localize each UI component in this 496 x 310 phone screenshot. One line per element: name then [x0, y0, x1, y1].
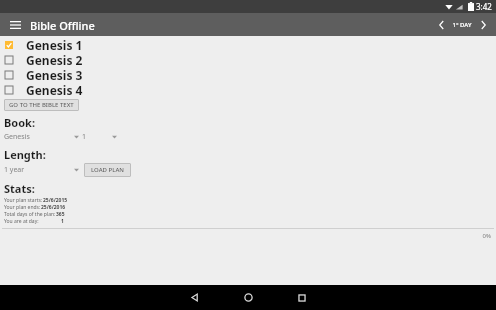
button[interactable]: Select chapter — [82, 131, 120, 143]
staticText: Genesis 2 — [26, 52, 83, 67]
staticText: 365 — [56, 211, 65, 218]
staticText: You are at day: — [4, 218, 39, 225]
staticText: 0% — [0, 232, 491, 240]
button[interactable]: Genesis 3 — [0, 67, 496, 82]
staticText: 25/6/2016 — [41, 204, 66, 211]
button[interactable]: Select plan length — [4, 164, 82, 176]
button[interactable]: Genesis 4 — [0, 82, 496, 97]
staticText: LOAD PLAN — [91, 166, 124, 174]
staticText: Genesis 3 — [26, 67, 83, 82]
staticText: 25/6/2015 — [43, 197, 68, 204]
staticText: Genesis — [4, 132, 74, 142]
button[interactable]: GO TO THE BIBLE TEXT — [4, 99, 79, 111]
button[interactable]: Previous day — [433, 15, 449, 35]
staticText: Your plan starts: — [4, 197, 43, 204]
staticText: 1 year — [4, 165, 74, 175]
staticText: Total days of the plan: — [4, 211, 56, 218]
staticText: 1 — [82, 132, 112, 142]
staticText: GO TO THE BIBLE TEXT — [9, 101, 74, 109]
staticText: Stats: — [4, 181, 35, 196]
button[interactable]: LOAD PLAN — [84, 163, 131, 177]
staticText: Your plan ends: — [4, 204, 41, 211]
staticText: Book: — [4, 115, 35, 130]
button[interactable]: Back — [178, 285, 210, 310]
button[interactable]: Next day — [475, 15, 491, 35]
staticText: Genesis 1 — [26, 37, 83, 52]
button[interactable]: Select book — [4, 131, 82, 143]
staticText: 3:42 — [476, 1, 492, 12]
staticText: 1° DAY — [449, 21, 475, 29]
button[interactable]: Genesis 2 — [0, 52, 496, 67]
staticText: Bible Offline — [30, 18, 95, 33]
button[interactable]: Recent apps — [286, 285, 318, 310]
button[interactable]: Open navigation drawer — [6, 16, 24, 34]
staticText: 1 — [61, 218, 64, 225]
button[interactable]: Home — [232, 285, 264, 310]
staticText: Genesis 4 — [26, 82, 83, 97]
staticText: Length: — [4, 147, 46, 162]
button[interactable]: Genesis 1 — [0, 37, 496, 52]
